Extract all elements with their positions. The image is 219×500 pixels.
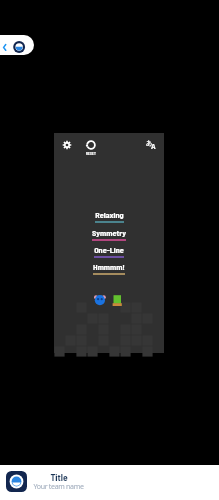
staticText: Symmetry (92, 228, 126, 238)
staticText: あ (146, 139, 153, 146)
button[interactable]: RESET (83, 137, 99, 159)
button[interactable]: Translate language (143, 137, 159, 153)
staticText: One-Line (94, 245, 124, 255)
button[interactable]: Back (0, 35, 34, 55)
staticText: Your team name (33, 482, 84, 492)
staticText: Hmmmm! (93, 262, 125, 272)
button[interactable]: Hmmmm! (79, 262, 139, 278)
button[interactable]: Relaxing (79, 210, 139, 226)
button[interactable]: Settings (59, 137, 75, 153)
button[interactable]: Symmetry (79, 228, 139, 244)
staticText: Relaxing (95, 210, 124, 220)
staticText: A (151, 141, 156, 151)
staticText: RESET (83, 151, 99, 155)
button[interactable]: One-Line (79, 245, 139, 261)
staticText: Title (50, 471, 68, 482)
button[interactable]: App icon (6, 471, 27, 492)
